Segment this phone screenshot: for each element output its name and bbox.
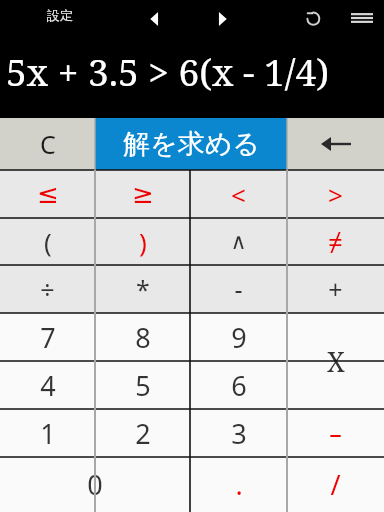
staticText: 設定 [47,7,73,23]
button[interactable]: Next [207,4,237,34]
staticText: 4 [40,367,56,404]
button[interactable]: 9 [190,313,287,361]
staticText: 2 [135,415,151,452]
staticText: * [136,272,150,306]
button[interactable]: X [287,313,384,409]
button[interactable]: Menu [346,2,378,34]
button[interactable]: < [190,170,287,218]
staticText: 0 [87,466,103,503]
staticText: 6 [231,367,247,404]
button[interactable]: 0 [0,457,190,512]
staticText: 5 [135,367,151,404]
staticText: - [234,272,243,306]
staticText: < [231,177,246,212]
button[interactable]: ÷ [0,265,95,313]
staticText: – [329,416,342,450]
button[interactable]: > [287,170,384,218]
staticText: 9 [231,319,247,356]
button[interactable]: ∧ [190,218,287,265]
button[interactable]: 3 [190,409,287,457]
button[interactable]: 5 [95,361,190,409]
button[interactable]: + [287,265,384,313]
staticText: 7 [40,319,56,356]
button[interactable]: - [190,265,287,313]
button[interactable]: ≤ [0,170,95,218]
staticText: C [40,127,56,161]
button[interactable]: 解を求める [95,118,287,170]
button[interactable]: – [287,409,384,457]
button[interactable]: 6 [190,361,287,409]
staticText: . [235,466,243,503]
button[interactable]: 1 [0,409,95,457]
button[interactable]: ( [0,218,95,265]
staticText: ÷ [40,272,55,306]
staticText: 解を求める [123,127,260,161]
staticText: 3 [231,415,247,452]
button[interactable] [287,118,384,170]
staticText: > [328,177,343,212]
staticText: X [327,343,345,380]
staticText: ∧ [230,229,247,255]
button[interactable]: 7 [0,313,95,361]
staticText: ) [139,224,147,259]
staticText: ≤ [37,179,59,209]
button[interactable]: 4 [0,361,95,409]
button[interactable]: 2 [95,409,190,457]
button[interactable]: . [190,457,287,512]
button[interactable]: ≠ [287,218,384,265]
staticText: ( [44,224,52,259]
button[interactable]: ≥ [95,170,190,218]
staticText: 5x + 3.5 > 6(x - 1/4) [6,46,329,96]
staticText: / [330,466,341,503]
button[interactable]: * [95,265,190,313]
button[interactable]: ) [95,218,190,265]
staticText: ≠ [328,224,343,259]
button[interactable]: 8 [95,313,190,361]
button[interactable]: Previous [140,4,170,34]
staticText: 1 [40,415,56,452]
staticText: 8 [135,319,151,356]
button[interactable]: / [287,457,384,512]
staticText: ≥ [132,179,154,209]
button[interactable]: Undo [297,2,329,34]
button[interactable]: 設定 [24,0,96,30]
staticText: + [328,272,343,306]
button[interactable]: C [0,118,95,170]
